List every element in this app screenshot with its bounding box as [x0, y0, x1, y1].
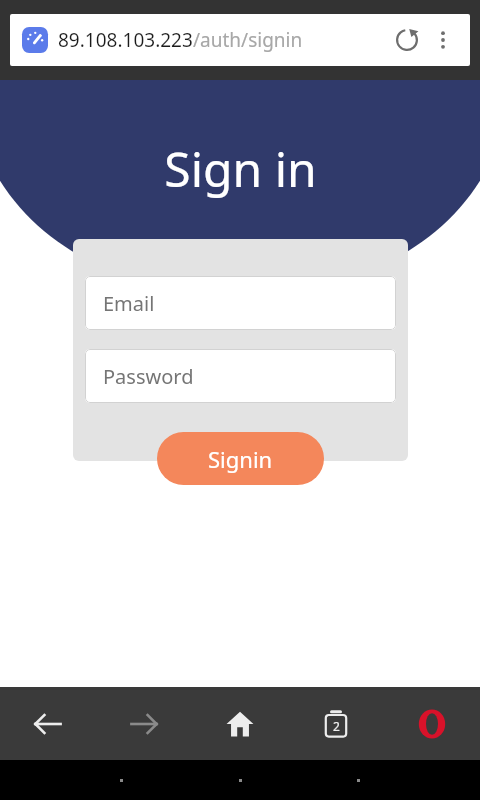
- staticText: /auth/signin: [193, 27, 303, 53]
- button[interactable]: Forward: [96, 687, 192, 760]
- button[interactable]: Back: [0, 687, 96, 760]
- staticText: Signin: [208, 444, 273, 474]
- button[interactable]: 89.108.103.223: [10, 14, 470, 66]
- button[interactable]: More options: [428, 25, 458, 55]
- staticText: Email: [103, 290, 155, 317]
- button[interactable]: Tabs: [288, 687, 384, 760]
- staticText: Password: [103, 363, 194, 390]
- button[interactable]: Reload: [390, 23, 424, 57]
- button[interactable]: Password: [85, 349, 396, 403]
- button[interactable]: Home: [192, 687, 288, 760]
- button[interactable]: Signin: [157, 432, 324, 485]
- staticText: Sign in: [164, 136, 317, 201]
- button[interactable]: Opera menu: [384, 687, 480, 760]
- staticText: 2: [333, 718, 340, 734]
- staticText: 89.108.103.223: [58, 27, 193, 53]
- button[interactable]: Email: [85, 276, 396, 330]
